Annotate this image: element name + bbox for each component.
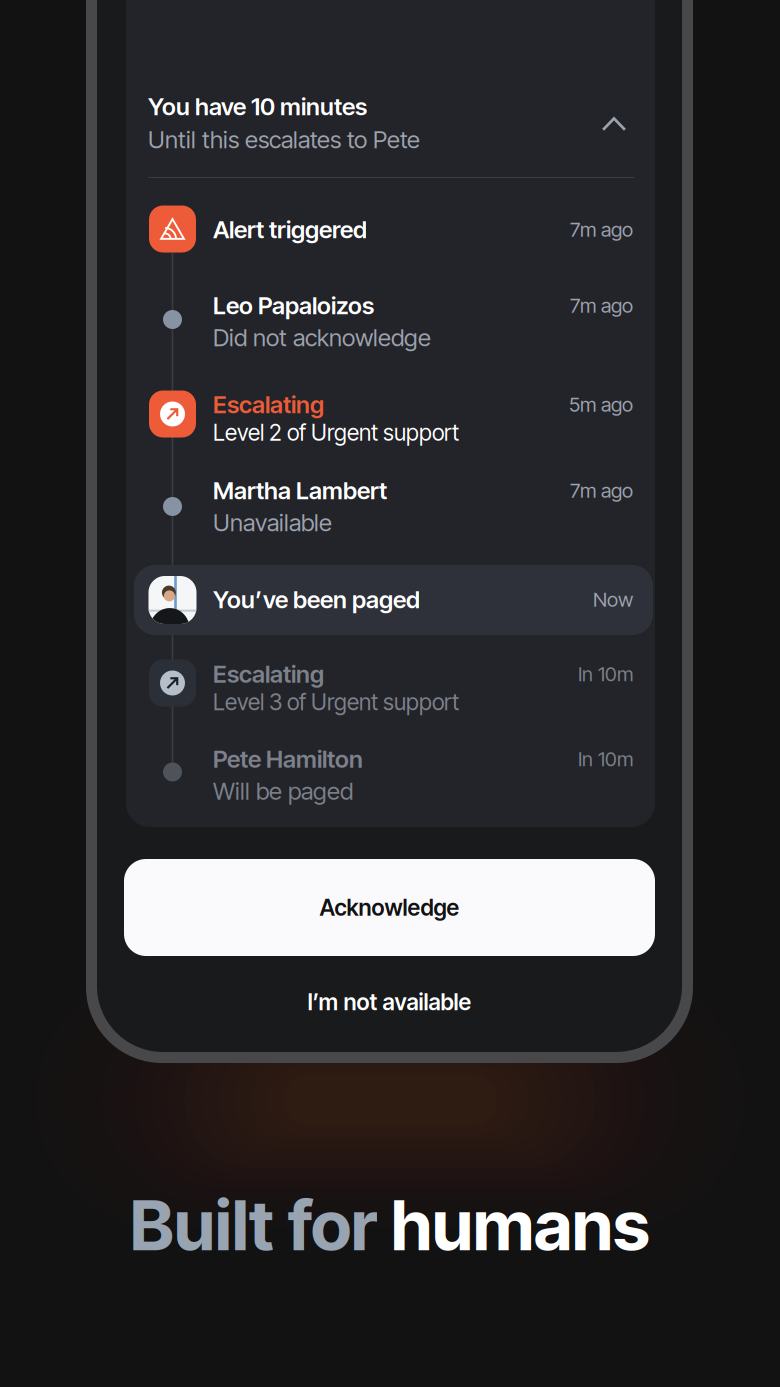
staticText: Level 2 of Urgent support <box>213 419 459 446</box>
staticText: You’ve been paged <box>213 585 420 614</box>
staticText: Built for <box>130 1183 391 1267</box>
staticText: Escalating <box>213 659 324 688</box>
staticText: humans <box>391 1183 650 1267</box>
staticText: Now <box>593 587 633 612</box>
button[interactable]: I’m not available <box>124 969 655 1035</box>
staticText: 7m ago <box>570 478 633 503</box>
staticText: Pete Hamilton <box>213 744 363 773</box>
staticText: Escalating <box>213 390 324 419</box>
staticText: Leo Papaloizos <box>213 291 374 320</box>
button[interactable] <box>134 565 653 635</box>
staticText: I’m not available <box>307 988 471 1016</box>
staticText: Until this escalates to Pete <box>148 125 420 154</box>
staticText: 7m ago <box>570 217 633 242</box>
staticText: Did not acknowledge <box>213 323 431 352</box>
button[interactable]: Collapse <box>590 102 638 146</box>
staticText: Acknowledge <box>319 894 459 921</box>
staticText: Will be paged <box>213 776 353 805</box>
staticText: Unavailable <box>213 508 332 537</box>
staticText: Martha Lambert <box>213 476 387 505</box>
button[interactable]: Acknowledge <box>124 859 655 956</box>
staticText: In 10m <box>578 747 633 771</box>
staticText: Level 3 of Urgent support <box>213 688 459 716</box>
staticText: In 10m <box>578 662 633 686</box>
staticText: Alert triggered <box>213 215 367 244</box>
staticText: You have 10 minutes <box>148 92 367 121</box>
staticText: 5m ago <box>569 392 633 417</box>
staticText: 7m ago <box>570 293 633 318</box>
